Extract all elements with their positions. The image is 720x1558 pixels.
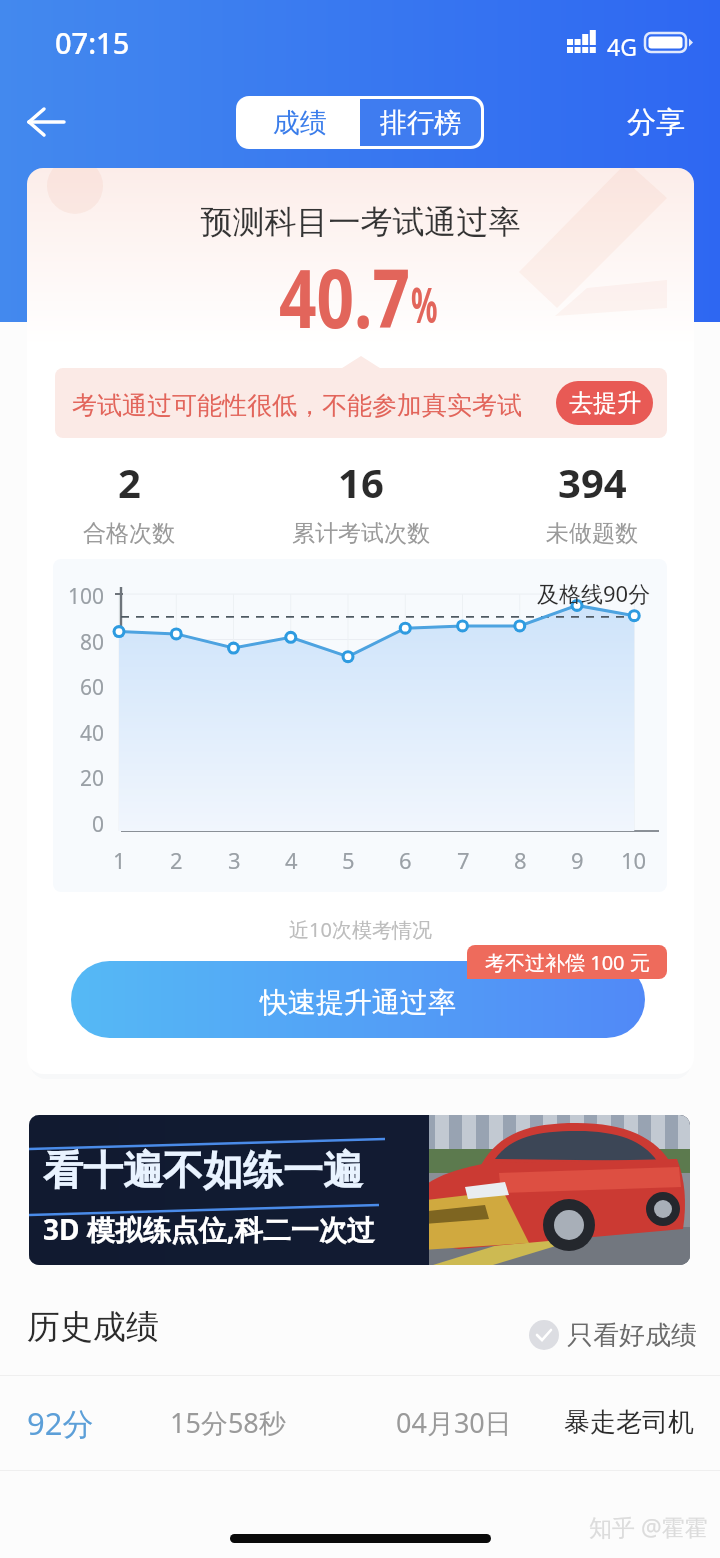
- staticText: 去提升: [569, 388, 641, 418]
- staticText: 3D 模拟练点位,科二一次过: [43, 1210, 375, 1248]
- staticText: 10: [621, 845, 647, 875]
- staticText: 20: [80, 764, 105, 793]
- staticText: 知乎 @霍霍: [589, 1511, 708, 1542]
- staticText: %: [411, 271, 438, 338]
- staticText: 5: [342, 845, 355, 875]
- staticText: 15分58秒: [170, 1404, 286, 1441]
- staticText: 看十遍不如练一遍: [43, 1145, 363, 1195]
- staticText: 快速提升通过率: [260, 985, 456, 1020]
- staticText: 92分: [27, 1402, 94, 1444]
- staticText: 0: [92, 810, 105, 839]
- staticText: 3: [228, 845, 241, 875]
- staticText: 9: [571, 845, 584, 875]
- button[interactable]: 成绩: [239, 99, 360, 146]
- staticText: 40.7: [279, 242, 410, 351]
- staticText: 07:15: [55, 23, 130, 62]
- button[interactable]: 排行榜: [360, 99, 481, 146]
- button[interactable]: 只看好成绩: [529, 1312, 697, 1358]
- staticText: 4G: [607, 31, 637, 62]
- staticText: 历史成绩: [27, 1306, 159, 1348]
- staticText: 近10次模考情况: [27, 916, 694, 943]
- staticText: 累计考试次数: [292, 519, 430, 548]
- button[interactable]: 分享: [608, 95, 704, 149]
- staticText: 2: [118, 455, 141, 509]
- staticText: 预测科目一考试通过率: [27, 202, 694, 242]
- staticText: 16: [338, 455, 384, 509]
- staticText: 考试通过可能性很低，不能参加真实考试: [72, 390, 522, 421]
- staticText: 04月30日: [396, 1404, 512, 1441]
- staticText: 100: [68, 582, 105, 611]
- staticText: 8: [514, 845, 527, 875]
- staticText: 分享: [627, 104, 685, 141]
- staticText: 60: [80, 673, 105, 702]
- staticText: 394: [558, 455, 627, 509]
- staticText: 未做题数: [546, 519, 638, 548]
- button[interactable]: 去提升: [556, 381, 653, 425]
- staticText: 考不过补偿 100 元: [485, 949, 650, 976]
- staticText: 暴走老司机: [564, 1406, 694, 1439]
- staticText: 成绩: [273, 106, 327, 140]
- button[interactable]: 92分: [0, 1375, 720, 1470]
- staticText: 排行榜: [380, 106, 461, 140]
- staticText: 及格线90分: [537, 578, 651, 608]
- staticText: 4: [285, 845, 298, 875]
- button[interactable]: 快速提升通过率: [71, 961, 645, 1038]
- staticText: 只看好成绩: [567, 1319, 697, 1352]
- button[interactable]: Back: [14, 92, 80, 152]
- staticText: 合格次数: [83, 519, 175, 548]
- staticText: 80: [80, 628, 105, 657]
- staticText: 1: [113, 845, 126, 875]
- staticText: 7: [457, 845, 470, 875]
- staticText: 2: [170, 845, 183, 875]
- button[interactable]: 看十遍不如练一遍: [29, 1115, 690, 1265]
- staticText: 40: [80, 719, 105, 748]
- staticText: 6: [399, 845, 412, 875]
